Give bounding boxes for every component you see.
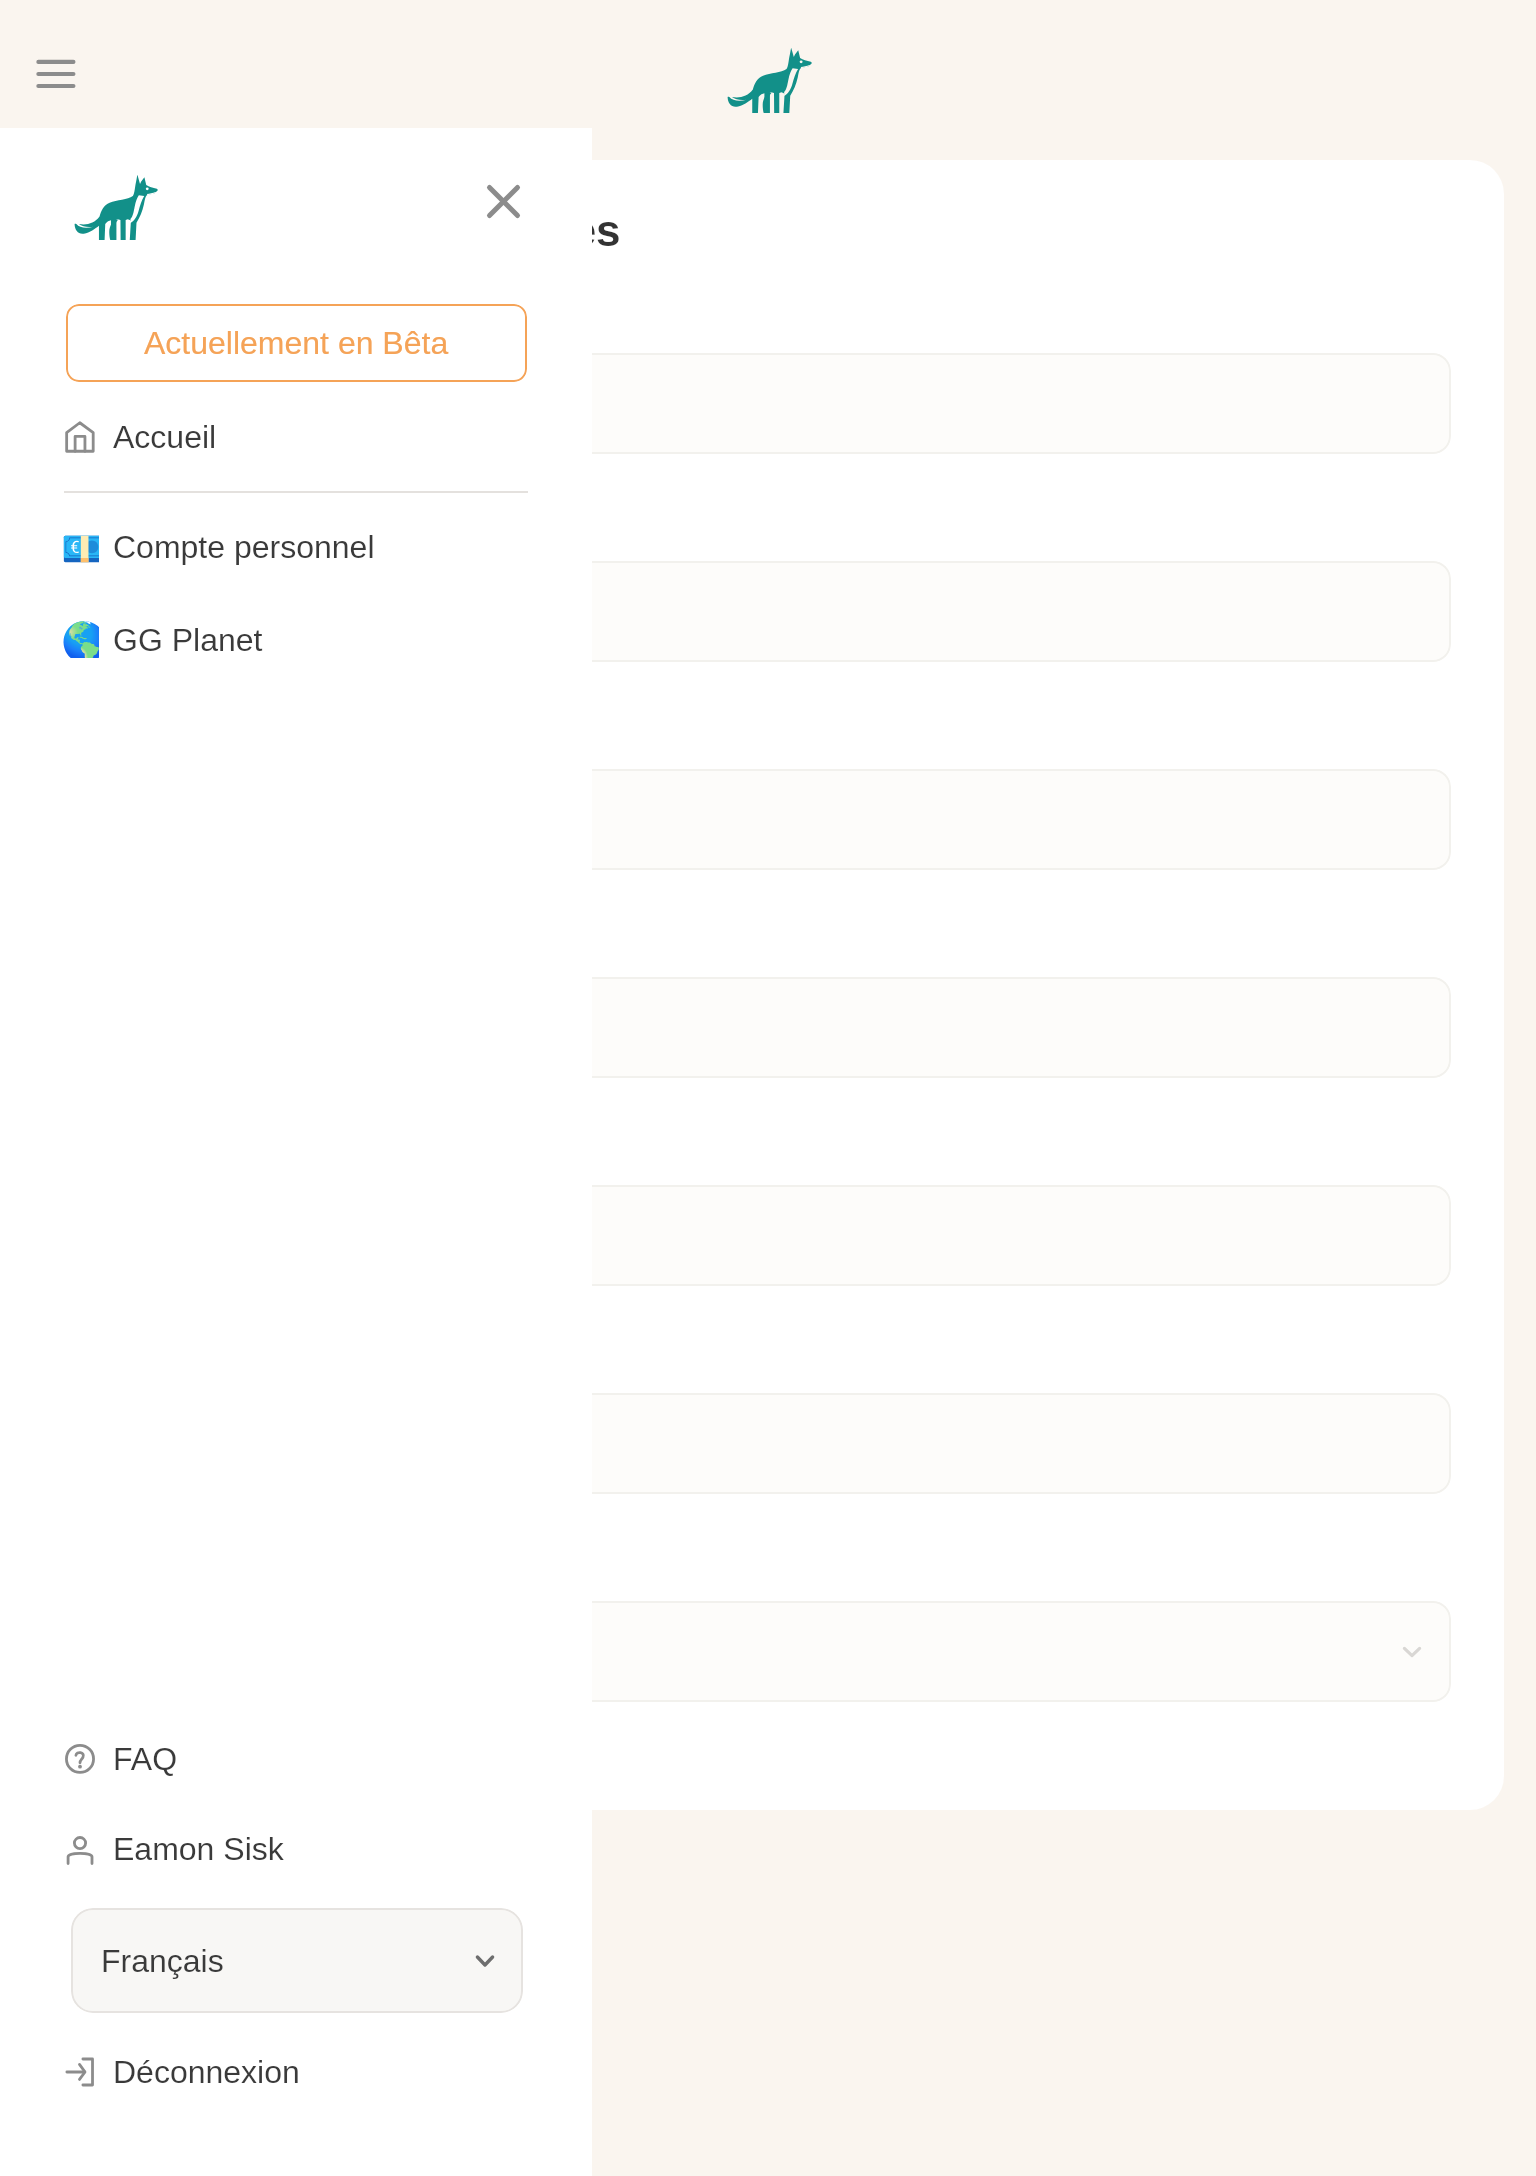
button[interactable]: Commande 2: [52, 561, 1451, 662]
button[interactable]: Déconnexion: [61, 2044, 528, 2100]
staticText: FAQ: [113, 1741, 178, 1777]
button[interactable]: Accueil: [61, 409, 528, 465]
button[interactable]: Eamon Sisk: [61, 1821, 528, 1877]
button[interactable]: Commande 1: [52, 353, 1451, 454]
staticText: Français: [101, 1943, 224, 1979]
staticText: GG Planet: [113, 622, 263, 658]
staticText: 🌎: [61, 620, 99, 658]
button[interactable]: Commande 7: [52, 1601, 1451, 1702]
staticText: Eamon Sisk: [113, 1831, 284, 1867]
button[interactable]: Commande 5: [52, 1185, 1451, 1286]
button[interactable]: Commande 6: [52, 1393, 1451, 1494]
button[interactable]: Français: [71, 1908, 523, 2013]
button[interactable]: FAQ: [61, 1731, 528, 1787]
button[interactable]: Open navigation menu: [7, 33, 103, 113]
button[interactable]: Commande 3: [52, 769, 1451, 870]
button[interactable]: 🌎: [61, 612, 528, 668]
button[interactable]: Close navigation menu: [473, 171, 534, 232]
staticText: Accueil: [113, 419, 217, 455]
staticText: Compte personnel: [113, 529, 375, 565]
staticText: 💶: [61, 527, 99, 565]
staticText: Déconnexion: [113, 2054, 300, 2090]
staticText: Actuellement en Bêta: [144, 325, 449, 361]
button[interactable]: Commande 4: [52, 977, 1451, 1078]
button[interactable]: Actuellement en Bêta: [66, 304, 527, 382]
staticText: Mes commandes: [266, 206, 621, 255]
button[interactable]: 💶: [61, 519, 528, 575]
